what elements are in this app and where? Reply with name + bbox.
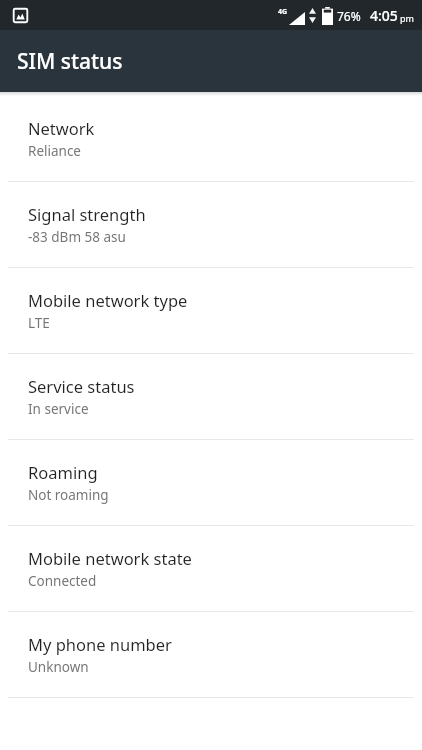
staticText: Service status xyxy=(28,375,135,397)
staticText: Mobile network state xyxy=(28,547,192,569)
button[interactable]: Mobile network state xyxy=(0,526,422,611)
staticText: 76% xyxy=(337,8,361,24)
staticText: LTE xyxy=(28,314,50,332)
staticText: Unknown xyxy=(28,658,89,676)
staticText: In service xyxy=(28,400,89,418)
button[interactable]: Mobile network type xyxy=(0,268,422,353)
staticText: Connected xyxy=(28,572,97,590)
staticText: Reliance xyxy=(28,142,81,160)
button[interactable]: My phone number xyxy=(0,612,422,697)
button[interactable]: Signal strength xyxy=(0,182,422,267)
button[interactable]: Service status xyxy=(0,354,422,439)
staticText: SIM status xyxy=(17,47,123,76)
staticText: pm xyxy=(400,12,414,24)
other: Screenshot notification xyxy=(12,7,29,24)
staticText: Network xyxy=(28,117,95,139)
staticText: Mobile network type xyxy=(28,289,188,311)
staticText: -83 dBm 58 asu xyxy=(28,228,126,246)
staticText: 4G xyxy=(278,7,288,17)
staticText: Not roaming xyxy=(28,486,109,504)
staticText: Roaming xyxy=(28,461,98,483)
staticText: Signal strength xyxy=(28,203,146,225)
button[interactable]: Roaming xyxy=(0,440,422,525)
staticText: My phone number xyxy=(28,633,172,655)
staticText: 4:05 xyxy=(370,6,398,25)
button[interactable]: Network xyxy=(0,96,422,181)
